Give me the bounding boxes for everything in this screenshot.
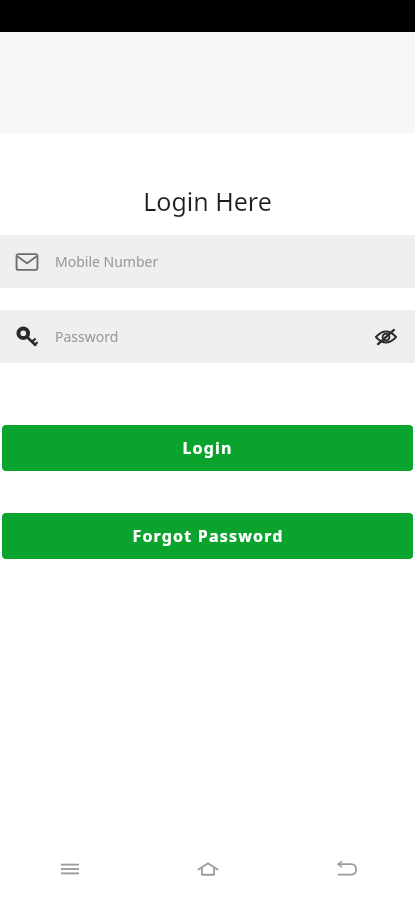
staticText: Login Here	[143, 184, 272, 218]
staticText: Login	[182, 437, 233, 459]
button[interactable]: Mobile Number field	[0, 235, 415, 288]
button[interactable]: Login	[2, 425, 413, 471]
button[interactable]: Back	[277, 838, 415, 900]
button[interactable]: Forgot Password	[2, 513, 413, 559]
button[interactable]: Password field	[0, 310, 415, 363]
button[interactable]: Recent apps	[0, 838, 139, 900]
staticText: Mobile Number	[55, 252, 159, 271]
button[interactable]: Toggle password visibility	[373, 324, 399, 350]
button[interactable]: Home	[139, 838, 277, 900]
staticText: Password	[55, 327, 119, 346]
staticText: Forgot Password	[132, 525, 284, 547]
